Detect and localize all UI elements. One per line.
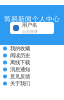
staticText: 离线下载 [10, 59, 30, 66]
staticText: 用户名 [22, 22, 37, 28]
staticText: 简易新闻个人中心 [4, 15, 60, 23]
staticText: 消息通知 [10, 66, 30, 73]
staticText: 我的收藏 [10, 45, 30, 52]
staticText: 意见反馈 [10, 73, 30, 80]
staticText: 关于我们 [10, 80, 30, 87]
staticText: 阅读历史 [10, 52, 30, 59]
staticText: 点击登录 [22, 29, 38, 34]
